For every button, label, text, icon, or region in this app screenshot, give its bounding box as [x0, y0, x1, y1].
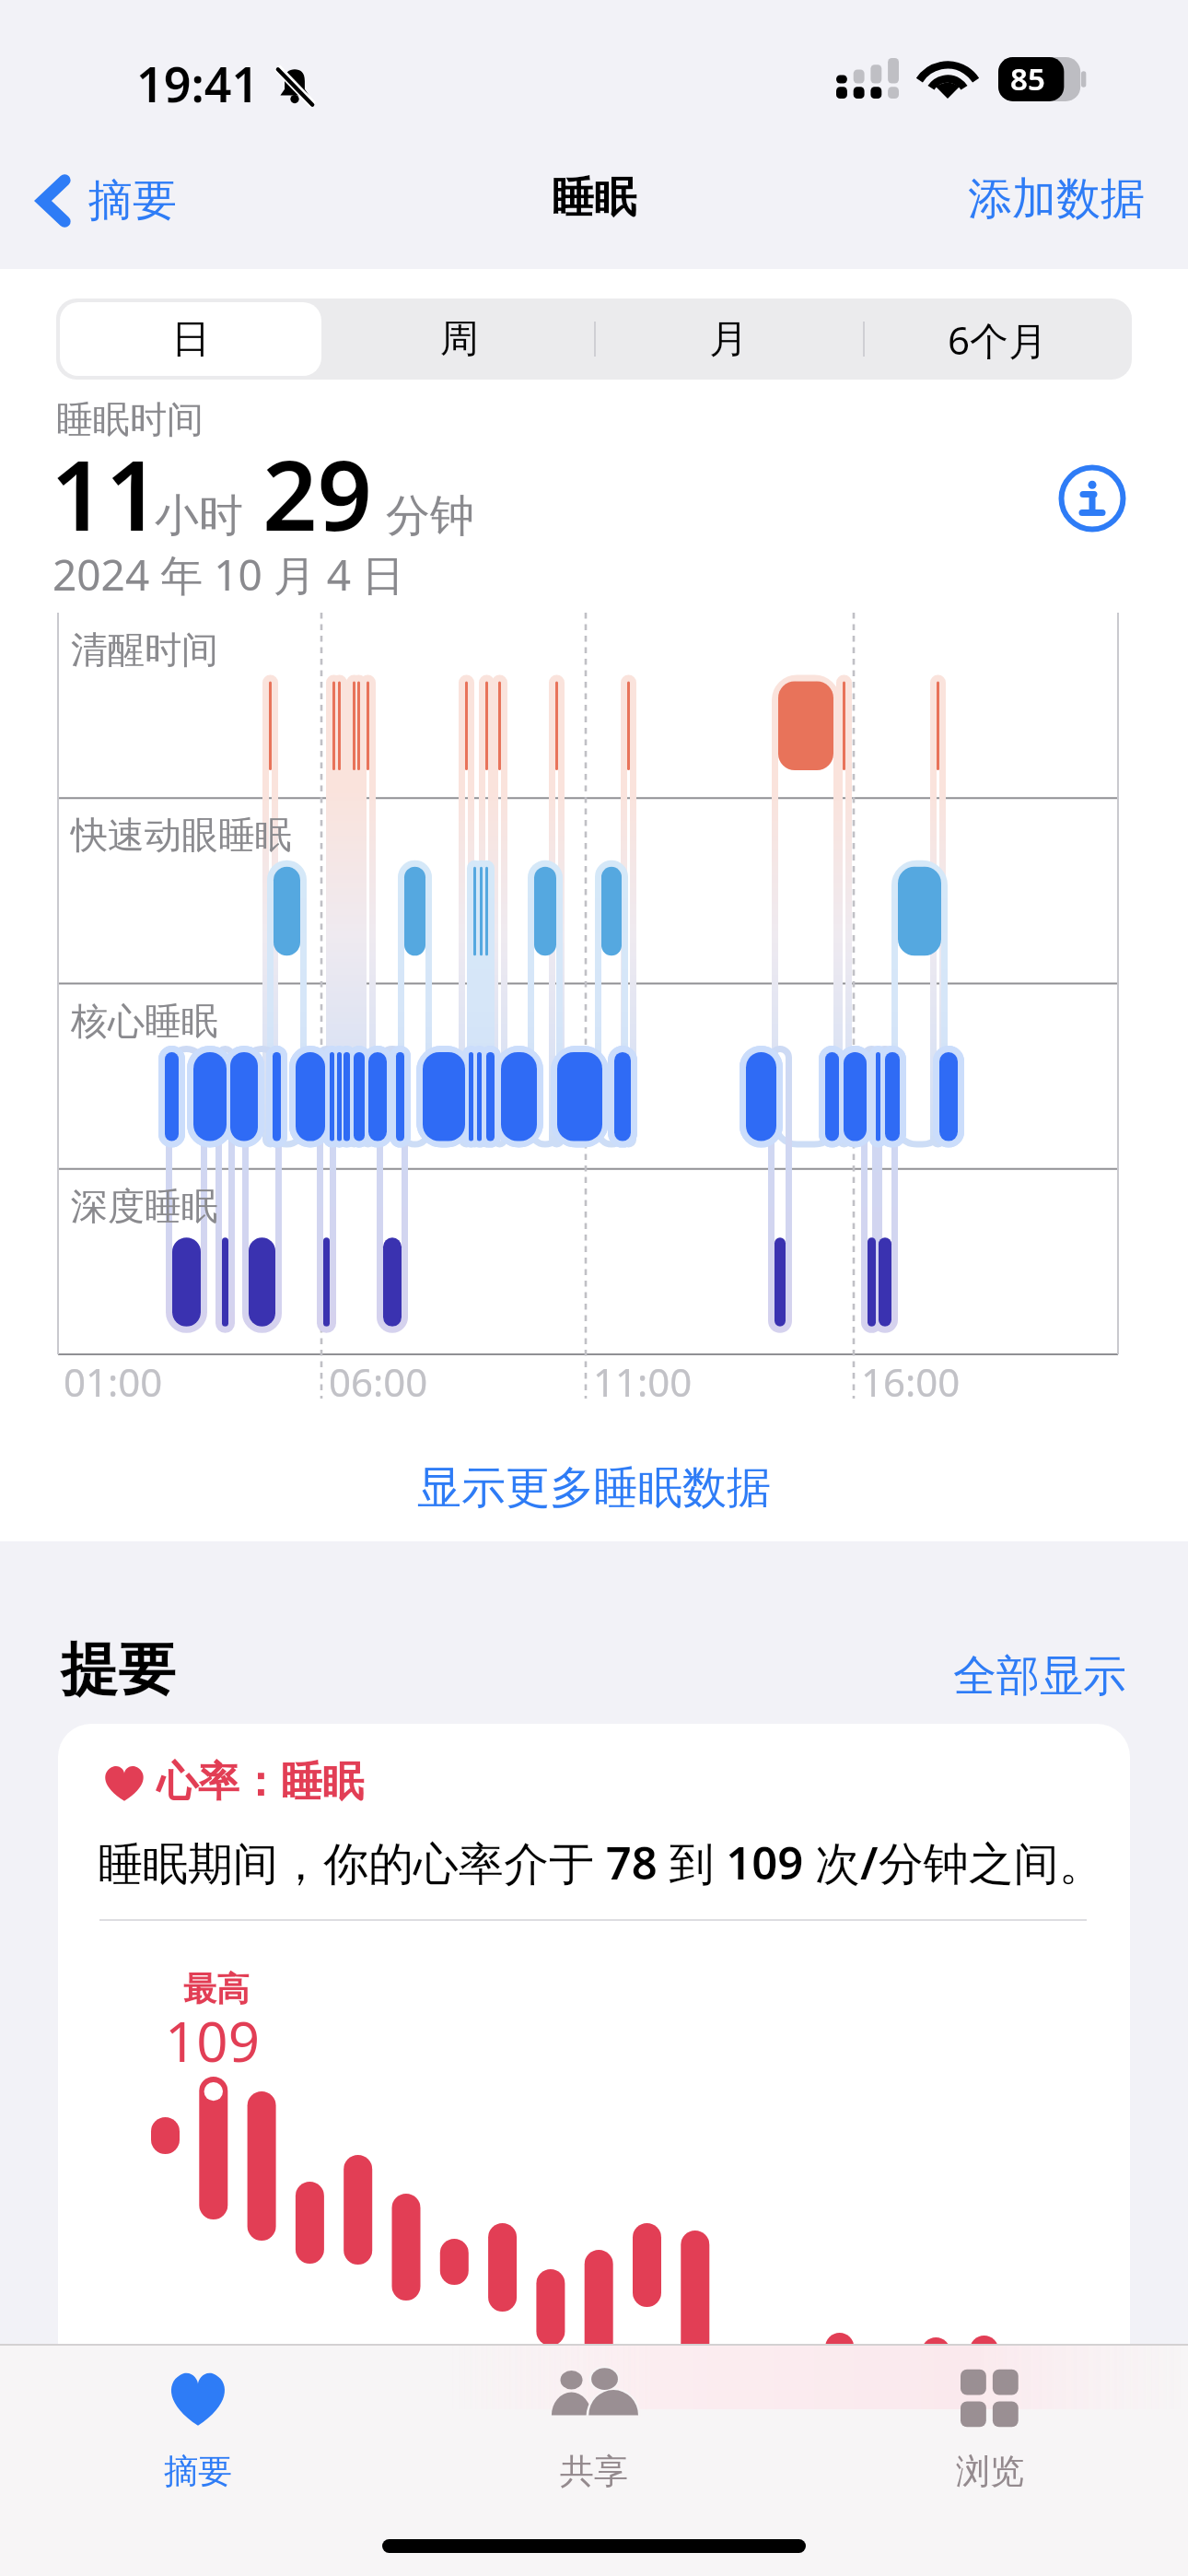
staticText: 01:00: [64, 1355, 163, 1408]
staticText: 核心睡眠: [71, 998, 218, 1044]
staticText: 小时: [155, 488, 243, 544]
staticText: 心率：睡眠: [157, 1756, 364, 1809]
staticText: 85: [1010, 58, 1045, 100]
button[interactable]: 日: [56, 299, 325, 380]
button[interactable]: 月: [594, 299, 863, 380]
staticText: 共享: [560, 2450, 628, 2493]
button[interactable]: 6个月: [863, 299, 1132, 380]
staticText: 摘要: [164, 2450, 232, 2493]
button[interactable]: [58, 1724, 1130, 2345]
staticText: 浏览: [956, 2450, 1024, 2493]
staticText: 睡眠时间: [56, 396, 204, 442]
staticText: 快速动眼睡眠: [71, 812, 292, 858]
staticText: 2024 年 10 月 4 日: [52, 545, 404, 603]
staticText: 29: [262, 428, 372, 559]
staticText: 提要: [61, 1633, 175, 1705]
staticText: 11: [51, 428, 160, 559]
button[interactable]: 周: [325, 299, 594, 380]
staticText: 清醒时间: [71, 626, 218, 673]
staticText: 19:41: [136, 51, 260, 116]
button[interactable]: 显示更多睡眠数据: [0, 1437, 1188, 1539]
staticText: 显示更多睡眠数据: [417, 1460, 771, 1516]
button[interactable]: 全部显示: [949, 1645, 1130, 1707]
staticText: 摘要: [88, 173, 177, 228]
button[interactable]: 共享: [396, 2354, 792, 2493]
button[interactable]: 摘要: [33, 164, 182, 238]
staticText: 日: [171, 315, 210, 364]
staticText: 06:00: [329, 1355, 428, 1408]
staticText: 深度睡眠: [71, 1183, 218, 1229]
button[interactable]: 浏览: [792, 2354, 1188, 2493]
button[interactable]: 信息: [1058, 464, 1126, 533]
staticText: 16:00: [861, 1355, 961, 1408]
button[interactable]: 添加数据: [968, 164, 1145, 227]
staticText: 最高: [183, 1968, 250, 2009]
staticText: 睡眠: [552, 171, 636, 225]
staticText: 月: [709, 315, 748, 364]
staticText: 分钟: [386, 488, 474, 544]
staticText: 11:00: [593, 1355, 693, 1408]
staticText: 109: [165, 2003, 260, 2078]
staticText: 周: [440, 315, 479, 364]
staticText: 睡眠期间，你的心率介于 78 到 109 次/分钟之间。: [98, 1832, 1111, 1893]
staticText: 6个月: [948, 313, 1048, 366]
button[interactable]: 摘要: [0, 2354, 396, 2493]
